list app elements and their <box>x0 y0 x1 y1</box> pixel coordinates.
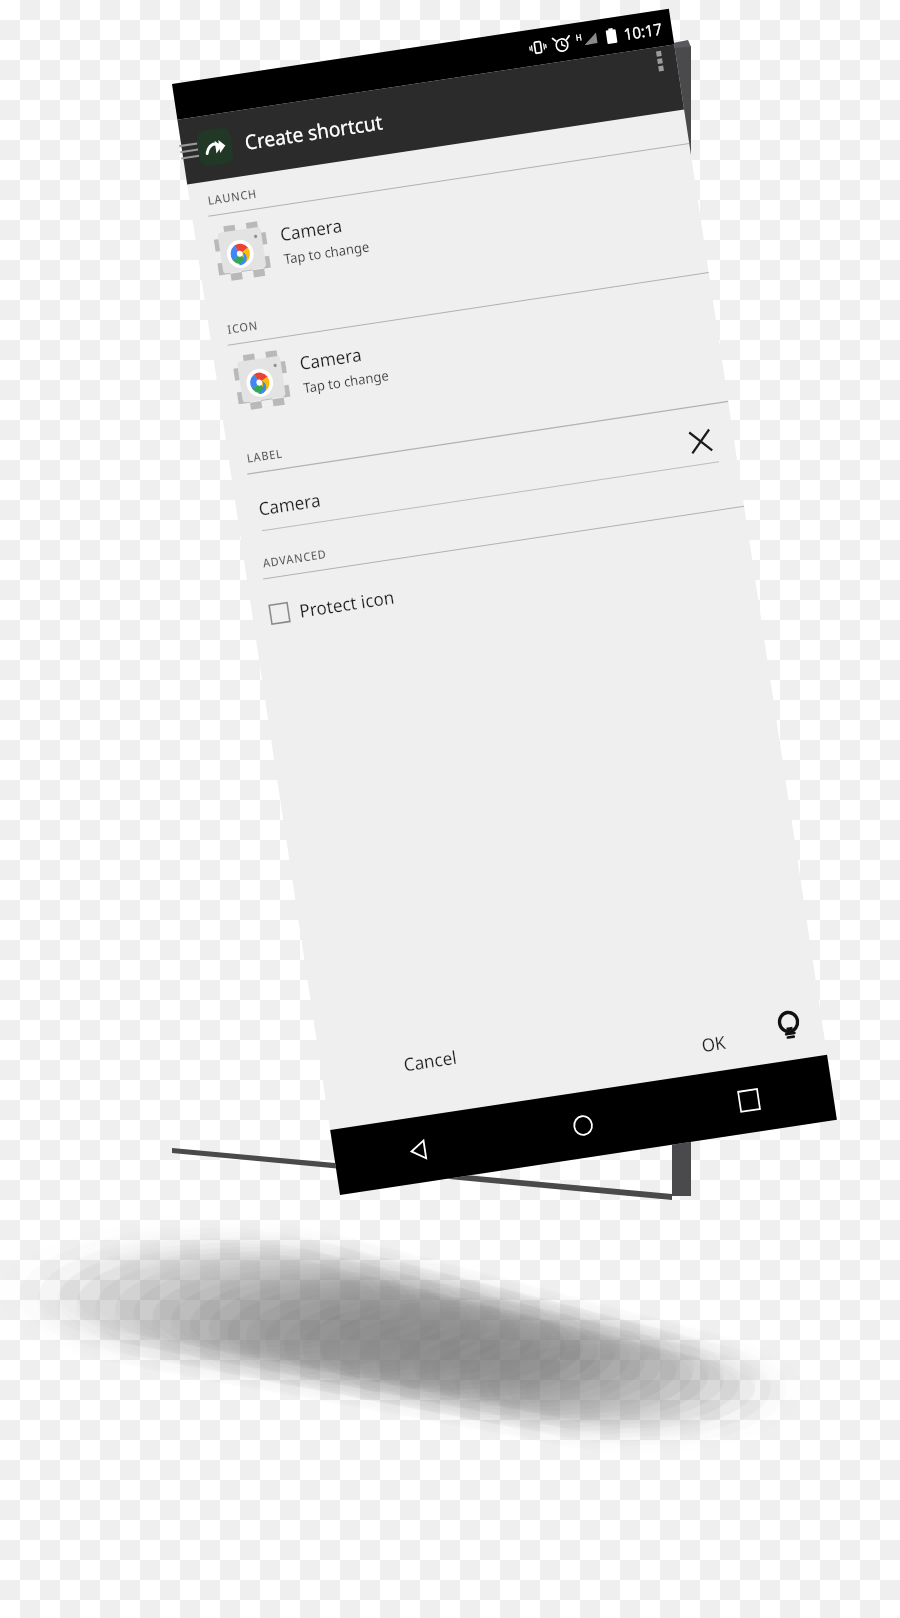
button[interactable]: Clear text <box>683 423 718 459</box>
button[interactable]: Tips <box>765 1002 813 1052</box>
staticText: LAUNCH <box>207 185 259 208</box>
button[interactable]: Back <box>330 1105 505 1195</box>
staticText: Camera <box>298 342 363 375</box>
staticText: LABEL <box>246 445 284 466</box>
staticText: Camera <box>257 432 688 521</box>
staticText: OK <box>700 1030 727 1057</box>
button[interactable]: Recent apps <box>661 1055 837 1145</box>
button[interactable]: Navigation menu <box>174 135 204 167</box>
button[interactable]: Protect icon <box>249 521 753 638</box>
staticText: 10:17 <box>622 17 664 44</box>
button[interactable]: Camera <box>231 402 737 535</box>
staticText: ADVANCED <box>261 545 327 571</box>
button[interactable]: OK <box>689 1022 738 1065</box>
button[interactable]: Cancel <box>391 1037 469 1085</box>
staticText: Protect icon <box>298 584 397 623</box>
button[interactable]: Camera <box>212 273 720 426</box>
staticText: H <box>575 31 582 43</box>
staticText: ICON <box>226 317 259 337</box>
staticText: Cancel <box>402 1045 458 1077</box>
button[interactable]: Camera <box>192 144 701 297</box>
button[interactable]: More options <box>640 40 679 81</box>
button[interactable]: Shortcut <box>195 127 235 167</box>
staticText: Tap to change <box>302 365 390 397</box>
button[interactable]: Home <box>495 1080 671 1170</box>
staticText: Create shortcut <box>243 108 385 156</box>
staticText: Tap to change <box>282 237 371 268</box>
staticText: Camera <box>278 213 344 246</box>
